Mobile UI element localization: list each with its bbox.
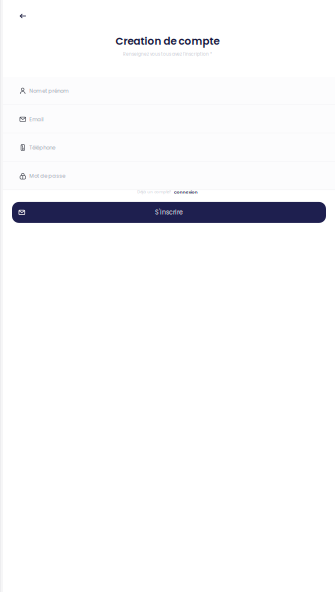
- button[interactable]: Déjà un compte?: [132, 187, 203, 197]
- button[interactable]: Nom et prénom: [0, 77, 335, 105]
- button[interactable]: S'inscrire: [12, 202, 326, 223]
- staticText: S'inscrire: [155, 208, 183, 217]
- staticText: Connexion: [174, 189, 198, 195]
- staticText: Creation de compte: [115, 34, 219, 48]
- button[interactable]: Mot de passe: [0, 162, 335, 190]
- button[interactable]: Back: [15, 9, 31, 23]
- staticText: Déjà un compte?: [137, 189, 171, 195]
- button[interactable]: Email: [0, 105, 335, 133]
- button[interactable]: Téléphone: [0, 133, 335, 162]
- staticText: Téléphone: [29, 144, 55, 151]
- staticText: Mot de passe: [29, 172, 65, 180]
- staticText: Email: [29, 116, 43, 123]
- staticText: Renseignez vous tous avez l'inscription …: [123, 51, 212, 57]
- staticText: Nom et prénom: [29, 87, 68, 95]
